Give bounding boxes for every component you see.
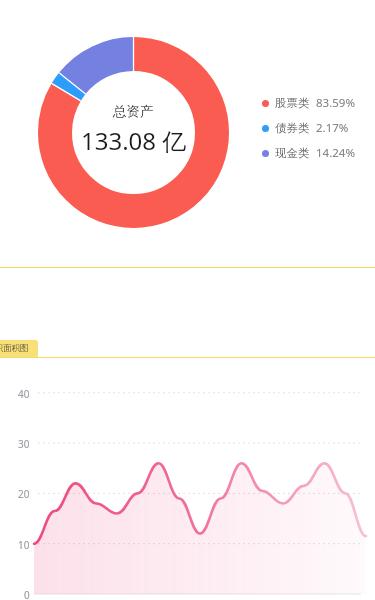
button[interactable] [0, 0, 375, 600]
button[interactable]: 股票类 [262, 95, 355, 111]
staticText: 0 [24, 588, 30, 600]
staticText: 20 [18, 487, 30, 501]
staticText: 40 [18, 387, 30, 401]
staticText: 2.17% [316, 120, 349, 136]
staticText: 堆积面积图 [0, 343, 29, 354]
button[interactable]: 堆积面积图 [0, 340, 38, 357]
staticText: 133.08 亿 [81, 124, 187, 157]
staticText: 10 [18, 538, 30, 552]
button[interactable]: 资产分布环形图 [38, 37, 229, 228]
button[interactable]: 债券类 [262, 120, 349, 136]
staticText: 总资产 [113, 103, 154, 120]
staticText: 30 [18, 437, 30, 451]
staticText: 债券类 [275, 121, 310, 135]
staticText: 83.59% [316, 95, 355, 111]
button[interactable]: 现金类 [262, 145, 355, 161]
staticText: 现金类 [275, 146, 310, 160]
staticText: 14.24% [316, 145, 355, 161]
staticText: 股票类 [275, 96, 310, 110]
